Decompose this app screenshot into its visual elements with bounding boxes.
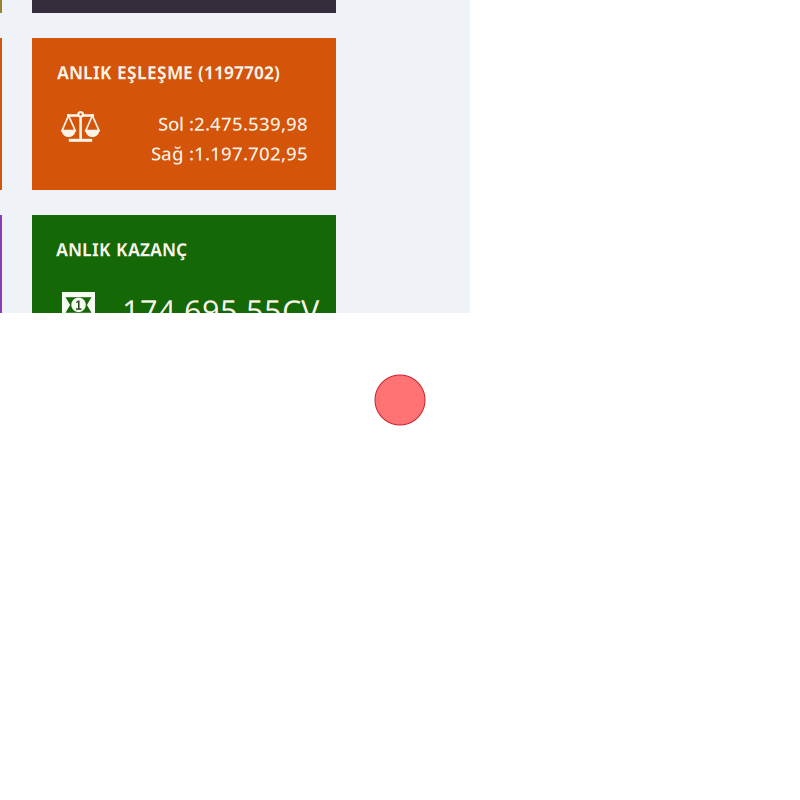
button[interactable]: ANLIK KAZANÇ xyxy=(32,215,336,367)
button[interactable]: ANLIK EŞLEŞME (1197702) xyxy=(32,38,336,190)
staticText: ANLIK KAZANÇ xyxy=(56,238,187,261)
staticText: Sol :2.475.539,98 xyxy=(158,111,308,136)
staticText: 174.695,55CV xyxy=(122,290,319,331)
staticText: Sağ :1.197.702,95 xyxy=(151,141,308,166)
staticText: ANLIK EŞLEŞME (1197702) xyxy=(57,61,280,84)
